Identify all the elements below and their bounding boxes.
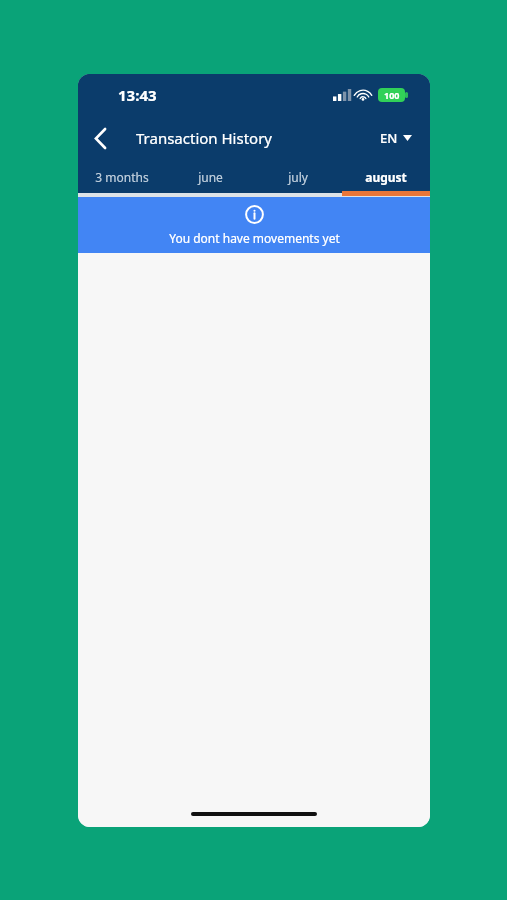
staticText: august [365,169,407,185]
staticText: EN [380,129,398,147]
button[interactable]: EN [368,121,430,155]
button[interactable]: june [166,160,254,193]
button[interactable]: Back [78,116,122,160]
staticText: 13:43 [118,85,157,105]
staticText: june [198,169,223,185]
button[interactable]: 3 months [78,160,166,193]
staticText: july [288,169,308,185]
button[interactable]: july [254,160,342,193]
staticText: You dont have movements yet [169,230,340,246]
button[interactable]: august [342,160,430,193]
button[interactable]: You dont have movements yet [78,197,430,253]
staticText: Transaction History [136,128,273,148]
staticText: 100 [384,89,400,101]
staticText: 3 months [95,169,149,185]
